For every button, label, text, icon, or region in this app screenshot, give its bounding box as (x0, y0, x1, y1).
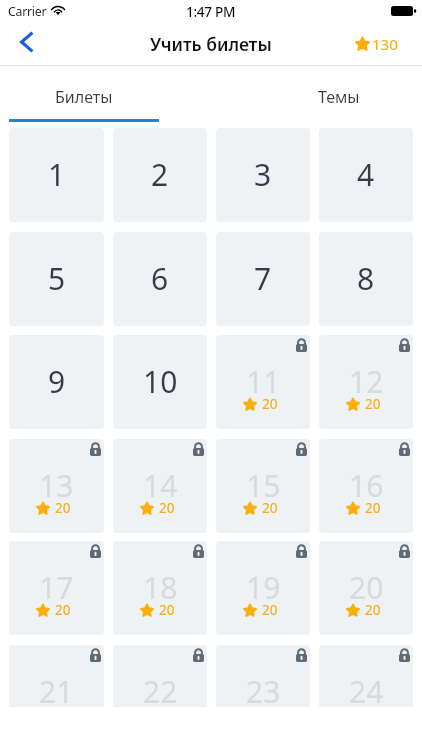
staticText: 17 (39, 567, 74, 608)
staticText: 2 (151, 154, 169, 195)
button[interactable]: 2 (113, 128, 207, 222)
button[interactable]: 1 (9, 128, 104, 222)
button[interactable]: 12 (319, 335, 413, 429)
button[interactable]: Темы (255, 66, 422, 120)
button[interactable]: 13 (9, 439, 104, 533)
staticText: Билеты (55, 86, 113, 108)
button[interactable]: 8 (319, 232, 413, 326)
button[interactable]: 7 (216, 232, 310, 326)
staticText: 11 (246, 361, 281, 402)
staticText: 12 (349, 361, 384, 402)
staticText: 8 (357, 258, 375, 299)
button[interactable]: 5 (9, 232, 104, 326)
staticText: Учить билеты (150, 32, 272, 56)
staticText: 24 (349, 671, 384, 707)
button[interactable]: Билеты (0, 66, 168, 120)
button[interactable]: 3 (216, 128, 310, 222)
staticText: 22 (143, 671, 178, 707)
button[interactable]: 16 (319, 439, 413, 533)
staticText: 15 (246, 465, 281, 506)
button[interactable]: 130 (354, 34, 404, 54)
button[interactable]: Back (9, 24, 45, 65)
button[interactable]: 11 (216, 335, 310, 429)
button[interactable]: 17 (9, 541, 104, 635)
staticText: Темы (318, 86, 360, 108)
staticText: 6 (151, 258, 169, 299)
staticText: 20 (55, 499, 71, 517)
staticText: 20 (365, 395, 381, 413)
staticText: 5 (48, 258, 66, 299)
staticText: 130 (372, 34, 398, 54)
staticText: 20 (262, 601, 278, 619)
button[interactable]: 21 (9, 645, 104, 707)
button[interactable]: 15 (216, 439, 310, 533)
staticText: Carrier (8, 3, 47, 20)
staticText: 21 (39, 671, 74, 707)
staticText: 18 (143, 567, 178, 608)
staticText: 20 (55, 601, 71, 619)
staticText: 14 (143, 465, 178, 506)
button[interactable]: 9 (9, 335, 104, 429)
staticText: 1 (48, 154, 66, 195)
button[interactable]: 14 (113, 439, 207, 533)
button[interactable]: 24 (319, 645, 413, 707)
staticText: 1:47 PM (186, 2, 236, 21)
button[interactable]: 18 (113, 541, 207, 635)
staticText: 20 (365, 601, 381, 619)
staticText: 20 (159, 499, 175, 517)
staticText: 20 (262, 499, 278, 517)
button[interactable]: 4 (319, 128, 413, 222)
staticText: 19 (246, 567, 281, 608)
button[interactable]: 23 (216, 645, 310, 707)
staticText: 20 (159, 601, 175, 619)
staticText: 20 (349, 567, 384, 608)
staticText: 10 (143, 361, 178, 402)
staticText: 13 (39, 465, 74, 506)
staticText: 20 (365, 499, 381, 517)
staticText: 7 (254, 258, 272, 299)
button[interactable]: 6 (113, 232, 207, 326)
button[interactable]: 20 (319, 541, 413, 635)
staticText: 3 (254, 154, 272, 195)
staticText: 20 (262, 395, 278, 413)
button[interactable]: 10 (113, 335, 207, 429)
staticText: 16 (349, 465, 384, 506)
button[interactable]: 19 (216, 541, 310, 635)
staticText: 23 (246, 671, 281, 707)
button[interactable]: 22 (113, 645, 207, 707)
staticText: 4 (357, 154, 375, 195)
staticText: 9 (48, 361, 66, 402)
